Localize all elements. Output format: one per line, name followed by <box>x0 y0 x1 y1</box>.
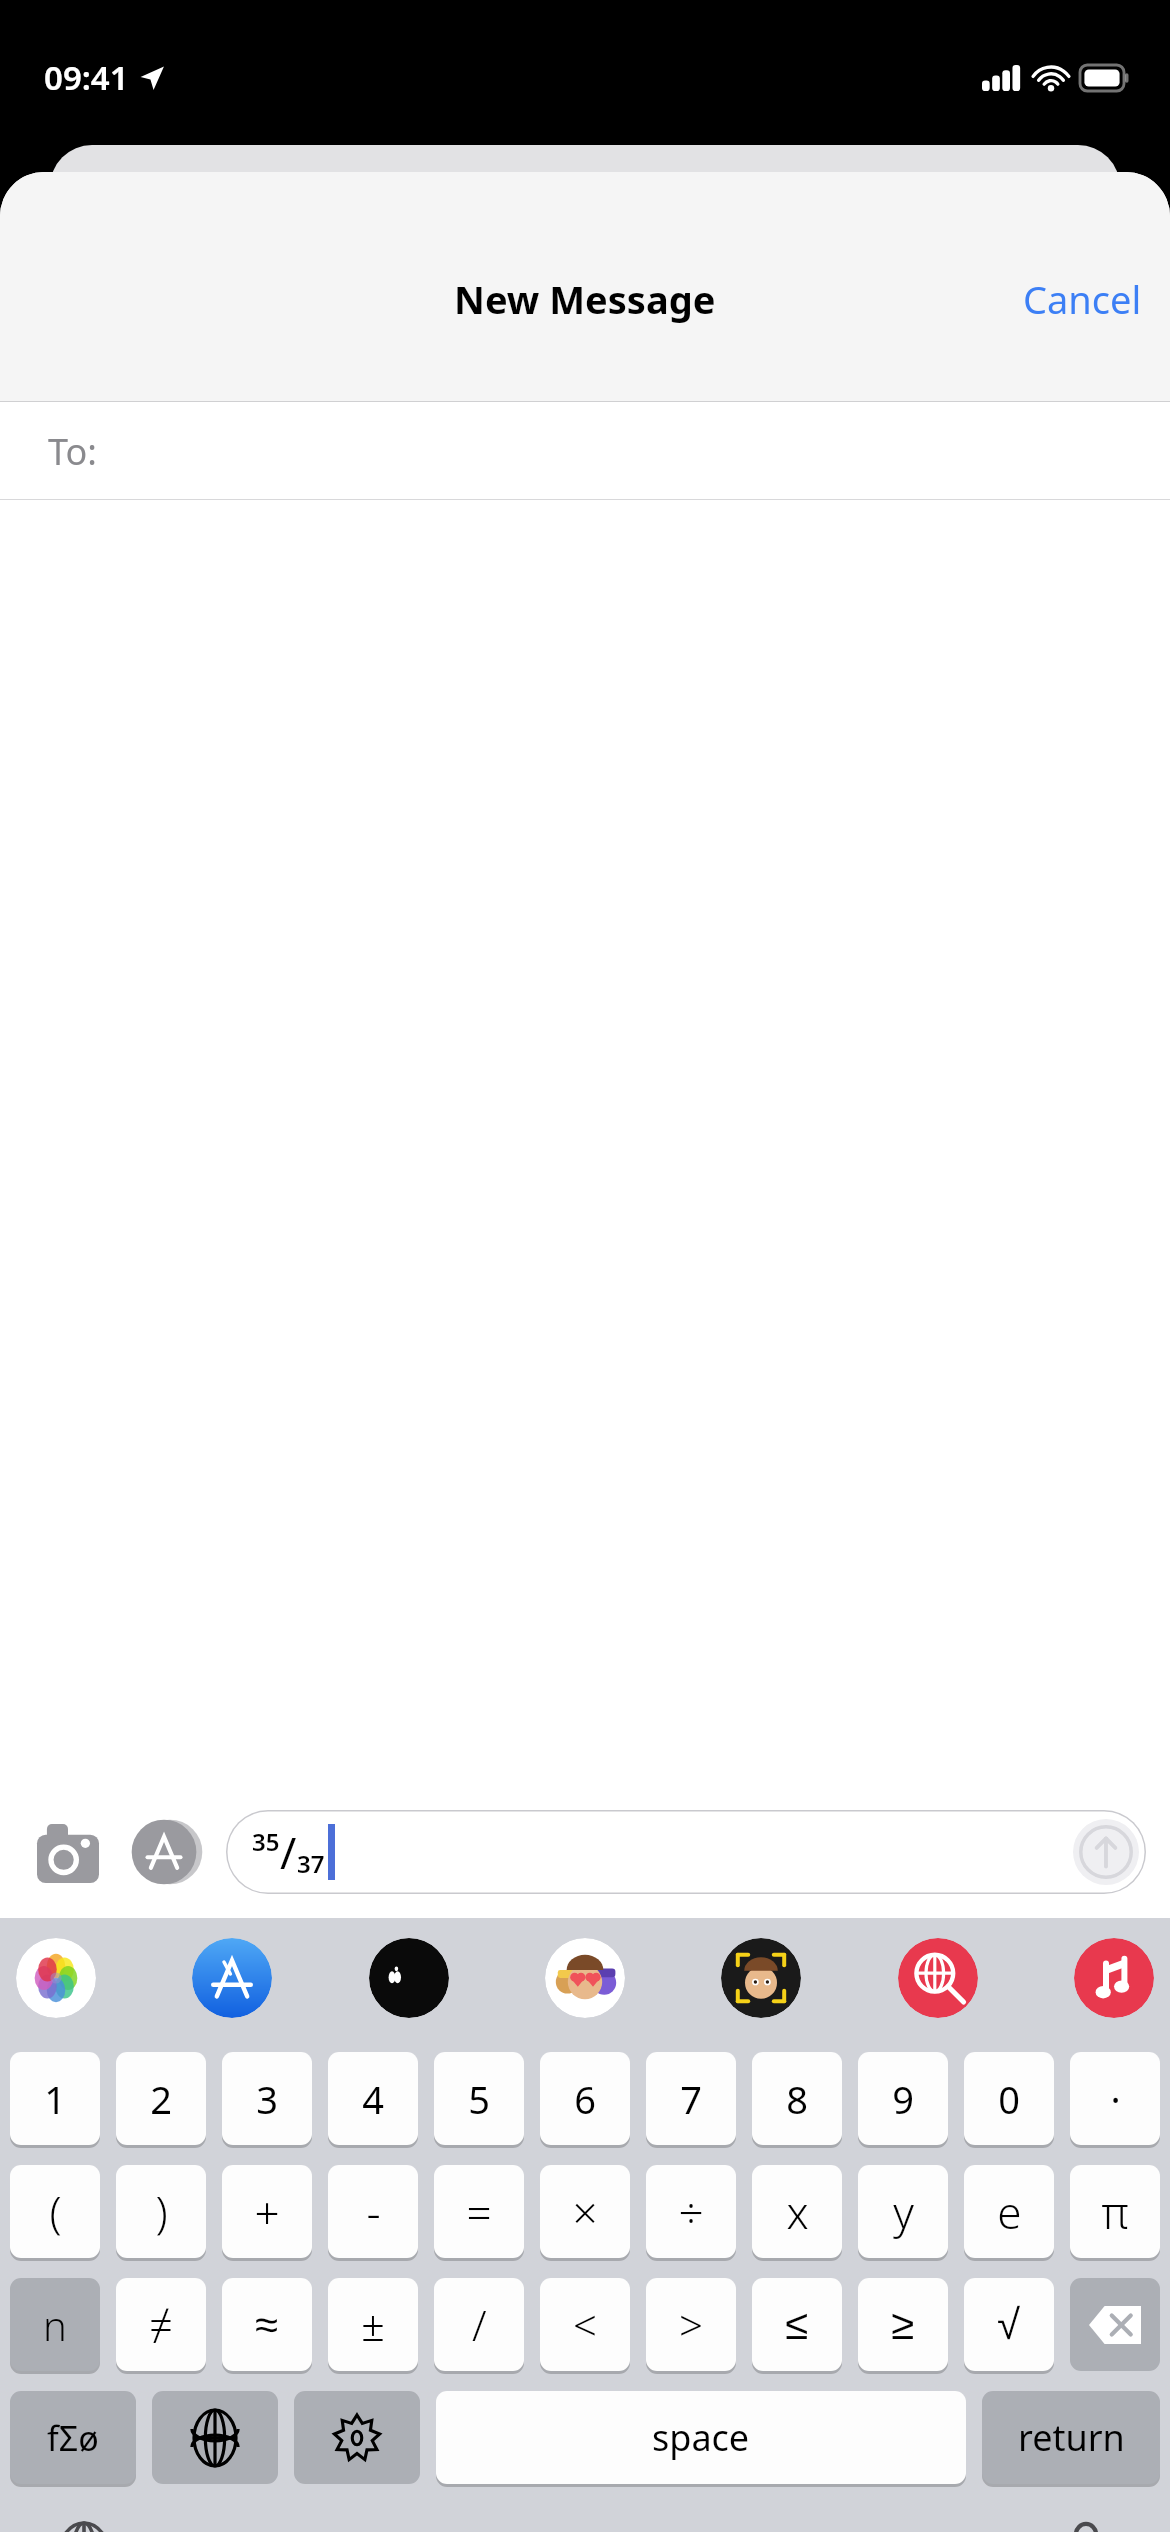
staticText: / <box>472 2296 487 2353</box>
staticText: 3 <box>256 2073 278 2125</box>
button[interactable]: 3 <box>222 2052 312 2145</box>
button[interactable]: Send <box>1073 1819 1139 1885</box>
button[interactable]: x <box>752 2165 842 2258</box>
button[interactable]: - <box>328 2165 418 2258</box>
staticText: y <box>893 2182 914 2242</box>
staticText: 09:41 <box>44 55 129 100</box>
staticText: 35 <box>252 1825 280 1858</box>
button[interactable]: App Store <box>192 1938 272 2018</box>
button[interactable]: Backspace <box>1070 2278 1160 2371</box>
staticText: 8 <box>786 2073 808 2125</box>
button[interactable]: 35 <box>226 1810 1146 1894</box>
staticText: ( <box>49 2182 62 2242</box>
staticText: 7 <box>680 2073 702 2125</box>
button[interactable]: Apps <box>128 1814 204 1890</box>
staticText: π <box>1101 2182 1129 2242</box>
button[interactable]: e <box>964 2165 1054 2258</box>
staticText: - <box>366 2182 381 2242</box>
staticText: + <box>254 2182 280 2242</box>
staticText: Cancel <box>1023 273 1142 325</box>
staticText: ≠ <box>149 2296 173 2353</box>
staticText: / <box>280 1822 297 1882</box>
button[interactable]: return <box>982 2391 1160 2484</box>
button[interactable]: Settings <box>294 2391 420 2484</box>
button[interactable]: < <box>540 2278 630 2371</box>
button[interactable]: space <box>436 2391 966 2484</box>
staticText: ≥ <box>891 2301 915 2348</box>
button[interactable]: Emoji keyboard <box>38 2512 130 2532</box>
staticText: × <box>572 2182 598 2242</box>
button[interactable]: 8 <box>752 2052 842 2145</box>
button[interactable]: / <box>434 2278 524 2371</box>
button[interactable]: 6 <box>540 2052 630 2145</box>
button[interactable]: Memoji stickers <box>545 1938 625 2018</box>
staticText: 1 <box>44 2073 66 2125</box>
staticText: 4 <box>362 2073 384 2125</box>
button[interactable]: Dictation <box>1040 2512 1132 2532</box>
button[interactable]: Switch keyboard <box>152 2391 278 2484</box>
button[interactable]: fΣø <box>10 2391 136 2484</box>
staticText: 0 <box>998 2073 1020 2125</box>
button[interactable]: × <box>540 2165 630 2258</box>
staticText: = <box>466 2182 492 2242</box>
button[interactable]: To: <box>0 402 1170 500</box>
button[interactable]: 9 <box>858 2052 948 2145</box>
staticText: To: <box>48 427 97 476</box>
button[interactable]: Memoji <box>721 1938 801 2018</box>
button[interactable]: 0 <box>964 2052 1054 2145</box>
staticText: ) <box>155 2182 168 2242</box>
staticText: ≈ <box>255 2301 279 2348</box>
staticText: 6 <box>574 2073 596 2125</box>
staticText: n <box>43 2298 67 2352</box>
button[interactable]: Music <box>1074 1938 1154 2018</box>
button[interactable]: π <box>1070 2165 1160 2258</box>
staticText: return <box>1018 2413 1125 2462</box>
button[interactable]: + <box>222 2165 312 2258</box>
button[interactable]: ≤ <box>752 2278 842 2371</box>
staticText: > <box>679 2296 703 2353</box>
staticText: √ <box>997 2301 1021 2348</box>
button[interactable]: ÷ <box>646 2165 736 2258</box>
staticText: 5 <box>468 2073 490 2125</box>
button[interactable]: · <box>1070 2052 1160 2145</box>
button[interactable]: > <box>646 2278 736 2371</box>
button[interactable]: ≠ <box>116 2278 206 2371</box>
staticText: · <box>1110 2073 1121 2125</box>
staticText: New Message <box>454 273 716 325</box>
staticText: e <box>997 2182 1022 2242</box>
button[interactable]: ( <box>10 2165 100 2258</box>
staticText: space <box>652 2413 750 2462</box>
staticText: fΣø <box>47 2415 99 2461</box>
staticText: < <box>573 2296 597 2353</box>
button[interactable]: √ <box>964 2278 1054 2371</box>
button[interactable]: = <box>434 2165 524 2258</box>
button[interactable]: Photos <box>16 1938 96 2018</box>
button[interactable]: ) <box>116 2165 206 2258</box>
staticText: 37 <box>297 1847 325 1880</box>
button[interactable]: ≈ <box>222 2278 312 2371</box>
button[interactable]: n <box>10 2278 100 2371</box>
button[interactable]: 1 <box>10 2052 100 2145</box>
staticText: 2 <box>150 2073 172 2125</box>
button[interactable]: ± <box>328 2278 418 2371</box>
button[interactable]: y <box>858 2165 948 2258</box>
button[interactable]: Apple Pay <box>369 1938 449 2018</box>
staticText: ÷ <box>678 2182 704 2242</box>
staticText: ± <box>361 2296 385 2353</box>
button[interactable]: 7 <box>646 2052 736 2145</box>
staticText: x <box>786 2182 809 2242</box>
button[interactable]: Images <box>898 1938 978 2018</box>
staticText: 9 <box>892 2073 914 2125</box>
button[interactable]: 2 <box>116 2052 206 2145</box>
button[interactable]: ≥ <box>858 2278 948 2371</box>
staticText: ≤ <box>785 2301 809 2348</box>
button[interactable]: 5 <box>434 2052 524 2145</box>
button[interactable]: Camera <box>30 1814 106 1890</box>
button[interactable]: 4 <box>328 2052 418 2145</box>
button[interactable]: Cancel <box>995 257 1170 341</box>
